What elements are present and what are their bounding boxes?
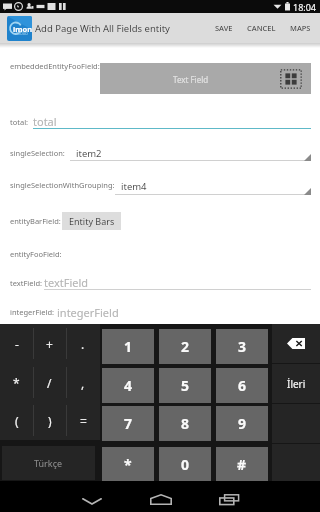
button[interactable]: #: [216, 447, 268, 482]
button[interactable]: Recents: [199, 481, 259, 512]
staticText: *: [124, 455, 132, 474]
button[interactable]: 0: [159, 447, 211, 482]
button[interactable]: İleri: [272, 364, 320, 403]
staticText: *: [13, 375, 20, 391]
button[interactable]: MAPS: [283, 13, 318, 43]
button[interactable]: *: [0, 363, 33, 402]
staticText: singleSelectionWithGrouping:: [10, 180, 115, 190]
button[interactable]: Space: [272, 444, 320, 483]
button[interactable]: 5: [159, 368, 211, 403]
staticText: 7: [124, 414, 133, 433]
staticText: 6: [238, 376, 247, 395]
staticText: MAPS: [290, 23, 311, 33]
staticText: integerField: [57, 305, 119, 320]
staticText: total:: [10, 117, 29, 127]
button[interactable]: Home: [131, 481, 191, 512]
button[interactable]: *: [102, 447, 154, 482]
button[interactable]: item2: [70, 143, 311, 161]
button[interactable]: -: [0, 324, 33, 363]
staticText: item4: [121, 180, 147, 193]
staticText: Entity Bars: [69, 215, 115, 227]
staticText: 0: [181, 455, 190, 474]
button[interactable]: +: [33, 324, 66, 363]
button[interactable]: (: [0, 401, 33, 440]
staticText: ,: [81, 375, 85, 391]
staticText: -: [15, 336, 19, 352]
staticText: Text Field: [173, 74, 209, 85]
staticText: SAVE: [215, 23, 233, 33]
button[interactable]: 9: [216, 406, 268, 441]
button[interactable]: 7: [102, 406, 154, 441]
staticText: imona: [13, 24, 32, 34]
staticText: Türkçe: [34, 457, 63, 469]
staticText: +: [46, 336, 53, 352]
staticText: Add Page With All Fields entity: [35, 22, 170, 35]
staticText: /: [47, 375, 52, 391]
staticText: 1: [124, 337, 133, 356]
staticText: 3: [238, 337, 247, 356]
staticText: 18:04: [293, 1, 317, 13]
button[interactable]: Delete: [272, 324, 320, 363]
button[interactable]: Türkçe: [2, 446, 95, 480]
staticText: 4: [124, 376, 133, 395]
staticText: 9: [238, 414, 247, 433]
staticText: 5: [181, 376, 190, 395]
button[interactable]: CANCEL: [240, 13, 283, 43]
button[interactable]: =: [66, 401, 100, 440]
button[interactable]: .: [66, 324, 100, 363]
staticText: CANCEL: [247, 23, 276, 33]
staticText: =: [80, 413, 87, 429]
staticText: (: [15, 413, 19, 429]
button[interactable]: Text Field: [100, 63, 311, 94]
button[interactable]: item4: [115, 176, 311, 195]
button[interactable]: 4: [102, 368, 154, 403]
staticText: .: [81, 336, 85, 352]
button[interactable]: 1: [102, 329, 154, 364]
button[interactable]: 3: [216, 329, 268, 364]
button[interactable]: 8: [159, 406, 211, 441]
button[interactable]: 6: [216, 368, 268, 403]
staticText: 2: [181, 337, 190, 356]
button[interactable]: textField: [44, 275, 311, 290]
staticText: ): [48, 413, 52, 429]
staticText: item2: [76, 147, 102, 160]
staticText: textField: [44, 275, 89, 290]
button[interactable]: /: [33, 363, 66, 402]
button[interactable]: ): [33, 401, 66, 440]
staticText: CLOUD: [16, 31, 28, 36]
staticText: entityFooField:: [10, 249, 62, 259]
button[interactable]: integerField: [57, 305, 311, 320]
staticText: embeddedEntityFooField:: [10, 61, 100, 71]
staticText: İleri: [287, 377, 306, 391]
staticText: #: [237, 455, 247, 474]
staticText: entityBarField:: [10, 216, 61, 226]
button[interactable]: total: [33, 114, 311, 129]
button[interactable]: Entity Bars: [62, 212, 121, 230]
button[interactable]: App icon: [7, 16, 32, 41]
button[interactable]: 2: [159, 329, 211, 364]
staticText: integerField:: [10, 307, 55, 317]
button[interactable]: SAVE: [208, 13, 240, 43]
other: Scan: [280, 69, 302, 89]
staticText: singleSelection:: [10, 148, 65, 158]
staticText: textField:: [10, 278, 43, 288]
button[interactable]: Back: [62, 481, 122, 512]
button[interactable]: ,: [66, 363, 100, 402]
staticText: total: [33, 114, 57, 129]
staticText: 8: [181, 414, 190, 433]
